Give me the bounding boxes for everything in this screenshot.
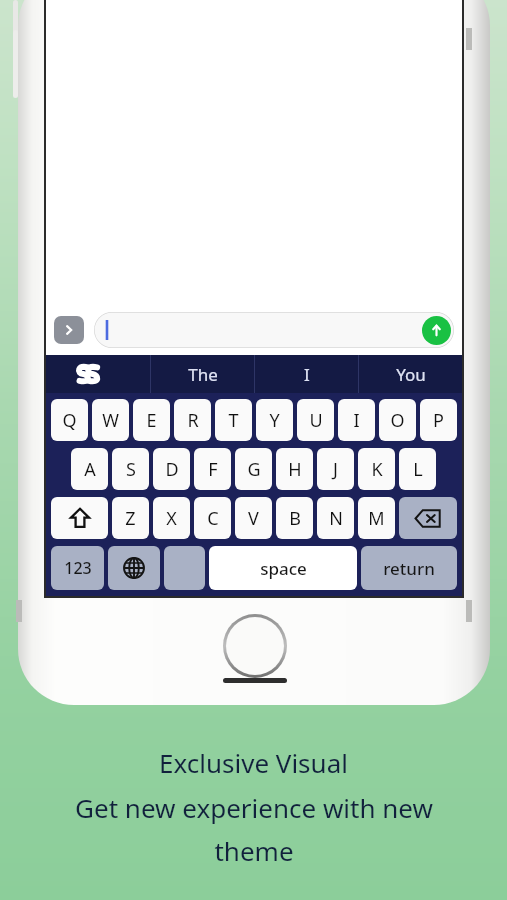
staticText: I [353, 408, 360, 433]
button[interactable]: V [235, 497, 272, 539]
button[interactable]: N [317, 497, 354, 539]
staticText: T [228, 408, 239, 433]
staticText: Q [62, 408, 77, 433]
button[interactable]: W [92, 399, 129, 441]
button[interactable]: Shift [51, 497, 108, 539]
button[interactable]: space [209, 546, 357, 590]
staticText: R [187, 408, 199, 433]
button[interactable]: I [255, 355, 358, 393]
staticText: K [371, 457, 383, 482]
staticText: M [368, 506, 385, 531]
button[interactable]: Send [422, 316, 451, 345]
staticText: P [433, 408, 444, 433]
button[interactable]: A [71, 448, 108, 490]
staticText: E [146, 408, 157, 433]
button[interactable]: return [361, 546, 457, 590]
staticText: G [247, 457, 261, 482]
button[interactable]: K [358, 448, 395, 490]
staticText: J [333, 457, 338, 482]
button[interactable]: Z [112, 497, 149, 539]
staticText: S [126, 457, 136, 482]
staticText: You [396, 363, 426, 386]
staticText: H [288, 457, 302, 482]
button[interactable]: J [317, 448, 354, 490]
staticText: 123 [64, 557, 92, 579]
button[interactable]: Send [94, 312, 454, 348]
staticText: theme [214, 833, 294, 868]
button[interactable]: U [297, 399, 334, 441]
staticText: U [309, 408, 323, 433]
button[interactable]: The [151, 355, 254, 393]
staticText: V [248, 506, 259, 531]
button[interactable]: Y [256, 399, 293, 441]
staticText: Get new experience with new [75, 790, 433, 825]
staticText: W [102, 408, 119, 433]
staticText: Y [269, 408, 280, 433]
button[interactable]: Home [226, 617, 284, 675]
button[interactable]: H [276, 448, 313, 490]
button[interactable]: 123 [51, 546, 104, 590]
staticText: X [166, 506, 177, 531]
staticText: F [208, 457, 218, 482]
button[interactable]: I [338, 399, 375, 441]
staticText: C [207, 506, 219, 531]
button[interactable]: Emoji [164, 546, 205, 590]
staticText: I [304, 363, 310, 386]
button[interactable]: T [215, 399, 252, 441]
button[interactable]: D [153, 448, 190, 490]
button[interactable]: More apps [54, 316, 84, 344]
staticText: D [165, 457, 179, 482]
button[interactable]: Keyboard settings [46, 355, 150, 393]
button[interactable]: Backspace [399, 497, 457, 539]
staticText: space [260, 557, 307, 580]
button[interactable]: P [420, 399, 457, 441]
button[interactable]: Q [51, 399, 88, 441]
button[interactable]: F [194, 448, 231, 490]
staticText: The [188, 363, 218, 386]
button[interactable]: O [379, 399, 416, 441]
button[interactable]: X [153, 497, 190, 539]
button[interactable]: L [399, 448, 436, 490]
staticText: Z [125, 506, 136, 531]
button[interactable]: G [235, 448, 272, 490]
button[interactable]: E [133, 399, 170, 441]
button[interactable]: B [276, 497, 313, 539]
button[interactable]: S [112, 448, 149, 490]
staticText: B [289, 506, 301, 531]
button[interactable]: M [358, 497, 395, 539]
staticText: return [383, 557, 435, 580]
staticText: Exclusive Visual [159, 745, 348, 780]
button[interactable]: R [174, 399, 211, 441]
staticText: L [413, 457, 423, 482]
staticText: N [329, 506, 343, 531]
staticText: O [390, 408, 405, 433]
button[interactable]: Change language [108, 546, 160, 590]
button[interactable]: C [194, 497, 231, 539]
button[interactable]: You [359, 355, 462, 393]
staticText: A [84, 457, 96, 482]
